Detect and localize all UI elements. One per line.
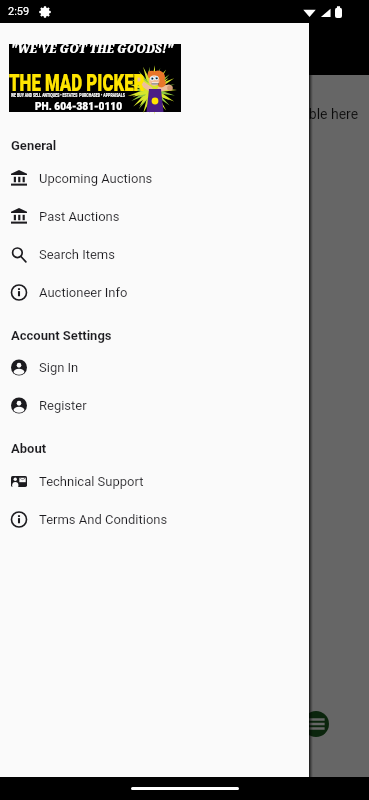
staticText: THE MAD PICKER bbox=[9, 69, 145, 97]
staticText: Terms And Conditions bbox=[39, 512, 168, 527]
staticText: About bbox=[11, 441, 47, 456]
staticText: Account Settings bbox=[11, 328, 112, 343]
staticText: 2:59 bbox=[8, 5, 30, 18]
staticText: Register bbox=[39, 398, 87, 413]
button[interactable]: Register bbox=[0, 386, 309, 424]
staticText: Sign In bbox=[39, 360, 79, 375]
staticText: General bbox=[11, 138, 57, 153]
staticText: "WE'VE GOT THE GOODS!" bbox=[11, 39, 173, 57]
staticText: Auctioneer Info bbox=[39, 285, 128, 300]
staticText: Upcoming Auctions bbox=[39, 171, 153, 186]
staticText: Past Auctions bbox=[39, 209, 120, 224]
staticText: PH. 604-381-0110 bbox=[35, 100, 122, 113]
button[interactable]: Upcoming Auctions bbox=[0, 159, 309, 197]
button[interactable]: Technical Support bbox=[0, 462, 309, 500]
button[interactable]: Auctioneer Info bbox=[0, 273, 309, 311]
button[interactable]: Show auction list bbox=[303, 711, 329, 737]
staticText: WE BUY AND SELL ANTIQUES • ESTATES PURCH… bbox=[11, 92, 125, 98]
button[interactable]: Search Items bbox=[0, 235, 309, 273]
button[interactable]: Past Auctions bbox=[0, 197, 309, 235]
button[interactable]: Sign In bbox=[0, 348, 309, 386]
staticText: Technical Support bbox=[39, 474, 144, 489]
staticText: There are currently no upcoming auctions… bbox=[0, 106, 369, 122]
button[interactable]: Terms And Conditions bbox=[0, 500, 309, 538]
staticText: Search Items bbox=[39, 247, 115, 262]
